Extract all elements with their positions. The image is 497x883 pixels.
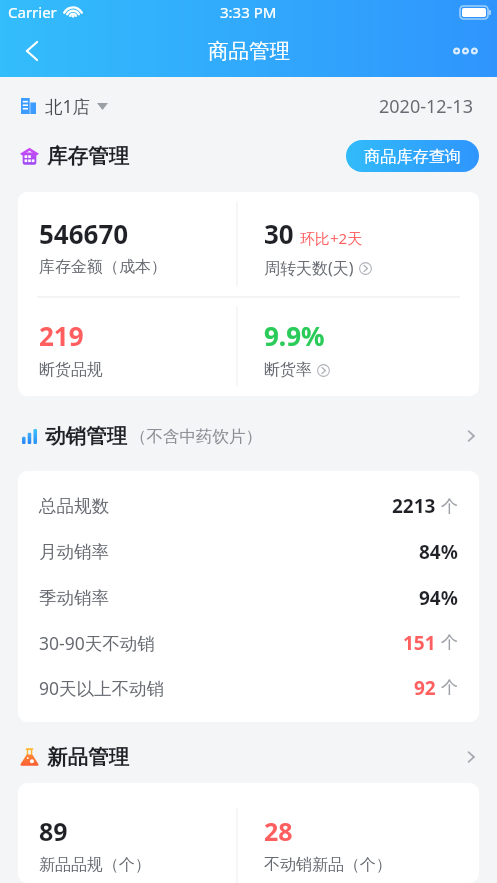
staticText: 30-90天不动销 bbox=[39, 631, 155, 655]
staticText: 28 bbox=[264, 814, 293, 848]
staticText: 动销管理 bbox=[45, 423, 127, 449]
staticText: 新品品规（个） bbox=[39, 855, 151, 875]
button[interactable]: More options bbox=[445, 31, 485, 71]
button[interactable]: 商品库存查询 bbox=[346, 140, 479, 172]
staticText: 库存管理 bbox=[47, 143, 129, 169]
staticText: 北1店 bbox=[45, 94, 91, 118]
staticText: 新品管理 bbox=[47, 744, 129, 770]
staticText: 个 bbox=[441, 632, 458, 653]
button[interactable]: Back bbox=[12, 31, 52, 71]
staticText: （不含中药饮片） bbox=[130, 426, 262, 447]
button[interactable]: 30-90天不动销 bbox=[39, 620, 458, 665]
button[interactable]: 新品管理 bbox=[20, 734, 479, 780]
staticText: 库存金额（成本） bbox=[39, 257, 167, 277]
staticText: 89 bbox=[39, 814, 68, 848]
button[interactable]: 动销管理 bbox=[22, 415, 479, 457]
button[interactable]: 总品规数 bbox=[39, 483, 458, 529]
staticText: 219 bbox=[39, 318, 84, 353]
staticText: 总品规数 bbox=[39, 495, 109, 517]
staticText: 环比+2天 bbox=[300, 228, 363, 248]
staticText: 90天以上不动销 bbox=[39, 676, 165, 700]
staticText: 94% bbox=[419, 585, 458, 611]
staticText: 3:33 PM bbox=[220, 2, 277, 22]
button[interactable]: 季动销率 bbox=[39, 575, 458, 620]
button[interactable]: 北1店 bbox=[21, 94, 108, 118]
staticText: 84% bbox=[419, 539, 458, 565]
staticText: 断货率 bbox=[264, 360, 312, 380]
button[interactable]: 月动销率 bbox=[39, 529, 458, 575]
staticText: 周转天数(天) bbox=[264, 257, 354, 279]
staticText: 2020-12-13 bbox=[379, 94, 473, 119]
staticText: 月动销率 bbox=[39, 541, 109, 563]
staticText: 9.9% bbox=[264, 318, 325, 353]
staticText: 个 bbox=[441, 496, 458, 517]
staticText: Carrier bbox=[8, 2, 57, 22]
staticText: 商品管理 bbox=[208, 38, 290, 64]
staticText: 个 bbox=[441, 677, 458, 698]
staticText: 2213 bbox=[392, 493, 436, 519]
button[interactable]: 90天以上不动销 bbox=[39, 665, 458, 710]
staticText: 季动销率 bbox=[39, 587, 109, 609]
staticText: 92 bbox=[414, 675, 436, 701]
staticText: 断货品规 bbox=[39, 360, 103, 380]
staticText: 546670 bbox=[39, 216, 129, 251]
staticText: 151 bbox=[403, 630, 436, 656]
staticText: 不动销新品（个） bbox=[264, 855, 392, 875]
staticText: 商品库存查询 bbox=[364, 146, 462, 166]
staticText: 30 bbox=[264, 216, 294, 251]
